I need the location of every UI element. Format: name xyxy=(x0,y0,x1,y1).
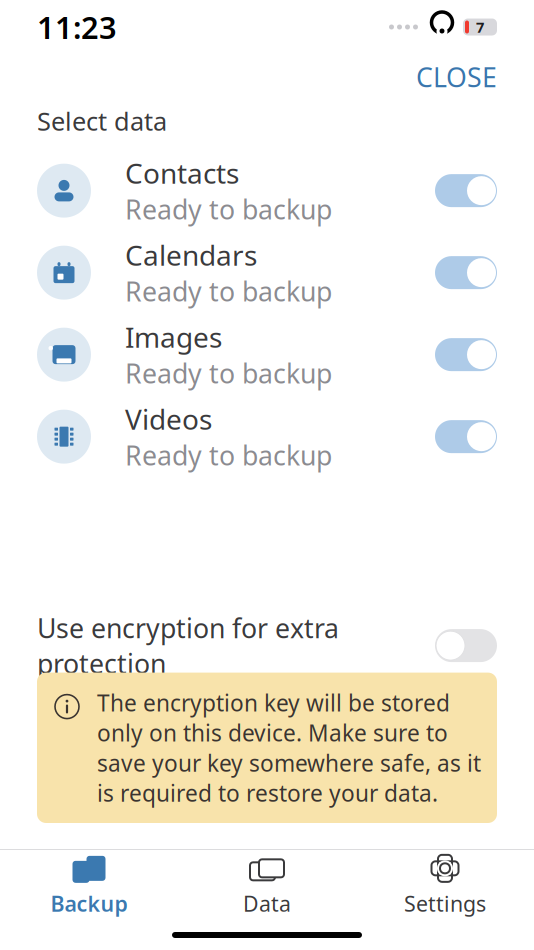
button[interactable]: Use encryption for extra protection xyxy=(0,619,534,673)
button[interactable]: CLOSE xyxy=(379,48,534,106)
staticText: Images xyxy=(125,318,222,355)
button[interactable]: Settings xyxy=(356,844,534,926)
staticText: Videos xyxy=(125,400,212,437)
staticText: Backup xyxy=(50,889,127,918)
staticText: Select data xyxy=(37,104,167,138)
staticText: CLOSE xyxy=(416,59,497,95)
staticText: Ready to backup xyxy=(125,437,332,473)
button[interactable]: Images xyxy=(0,314,534,396)
button[interactable]: Videos xyxy=(0,396,534,478)
staticText: Data xyxy=(243,889,291,918)
staticText: 11:23 xyxy=(37,7,117,47)
button[interactable]: Data xyxy=(178,844,356,926)
staticText: The encryption key will be stored only o… xyxy=(97,688,481,808)
button[interactable]: Contacts xyxy=(0,150,534,232)
staticText: Ready to backup xyxy=(125,191,332,227)
staticText: Ready to backup xyxy=(125,355,332,391)
staticText: Ready to backup xyxy=(125,273,332,309)
staticText: Settings xyxy=(404,889,486,918)
staticText: 7 xyxy=(476,17,484,37)
staticText: Contacts xyxy=(125,154,239,191)
staticText: Calendars xyxy=(125,236,257,273)
staticText: Use encryption for extra protection xyxy=(37,610,339,681)
button[interactable]: Calendars xyxy=(0,232,534,314)
button[interactable]: Backup xyxy=(0,844,178,926)
